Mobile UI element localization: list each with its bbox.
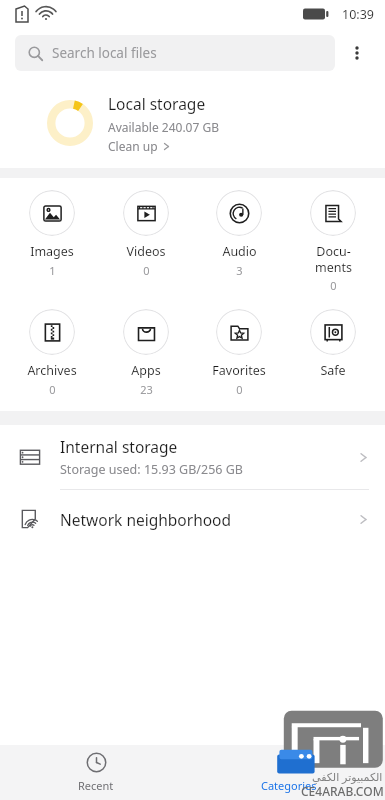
button[interactable]: More options [335, 31, 379, 75]
button[interactable]: Categories [192, 745, 385, 800]
button[interactable]: Search local files [15, 35, 335, 71]
staticText: Internal storage [60, 436, 178, 457]
staticText: Recent [78, 778, 114, 793]
button[interactable]: Videos [104, 186, 188, 282]
staticText: Search local files [52, 44, 157, 62]
button[interactable]: Internal storage [0, 425, 385, 489]
staticText: Archives [27, 362, 77, 379]
staticText: Favorites [212, 362, 266, 379]
staticText: Apps [131, 362, 161, 379]
staticText: Available 240.07 GB [108, 119, 219, 135]
staticText: 0 [330, 278, 337, 293]
staticText: 0 [143, 263, 150, 278]
staticText: Clean up [108, 138, 158, 154]
staticText: CE4ARAB.COM [301, 783, 384, 799]
button[interactable]: Favorites [197, 305, 281, 401]
staticText: 10:39 [342, 6, 374, 23]
staticText: Docu- ments [315, 243, 352, 275]
button[interactable]: Safe [291, 305, 375, 383]
button[interactable]: Apps [104, 305, 188, 401]
staticText: Images [30, 243, 74, 260]
staticText: 3 [236, 263, 243, 278]
staticText: Storage used: 15.93 GB/256 GB [60, 461, 243, 478]
staticText: Audio [222, 243, 257, 260]
staticText: 23 [140, 382, 153, 397]
staticText: 0 [236, 382, 243, 397]
button[interactable]: Images [10, 186, 94, 282]
button[interactable]: Local storage [0, 78, 385, 168]
staticText: Local storage [108, 93, 206, 114]
button[interactable]: Network neighborhood [0, 490, 385, 548]
staticText: Safe [320, 362, 346, 379]
button[interactable]: Audio [197, 186, 281, 282]
button[interactable]: Recent [0, 745, 192, 800]
button[interactable]: Archives [10, 305, 94, 401]
staticText: Categories [261, 778, 317, 793]
staticText: 0 [49, 382, 56, 397]
staticText: Videos [126, 243, 166, 260]
staticText: Network neighborhood [60, 509, 358, 530]
button[interactable]: Docu- ments [291, 186, 375, 297]
staticText: الكمبيوتر الكفي [312, 769, 383, 784]
staticText: 1 [49, 263, 56, 278]
